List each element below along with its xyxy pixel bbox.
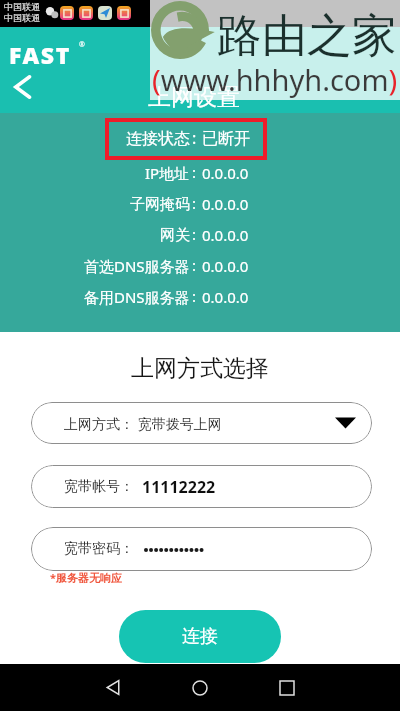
staticText: 备用DNS服务器 xyxy=(84,287,190,307)
staticText: 0.0.0.0 xyxy=(202,256,249,276)
staticText: IP地址 xyxy=(145,163,190,183)
staticText: 上网方式选择 xyxy=(0,354,400,383)
staticText: 首选DNS服务器 xyxy=(84,256,190,276)
staticText: 连接状态 xyxy=(126,129,190,149)
staticText: (www.hhhyh.com) xyxy=(152,60,398,99)
button[interactable]: Back xyxy=(93,664,133,711)
staticText: 子网掩码 xyxy=(130,195,190,214)
staticText: 连接 xyxy=(182,625,218,648)
staticText: : xyxy=(192,255,197,275)
staticText: 已断开 xyxy=(202,129,250,149)
staticText: : xyxy=(192,162,197,182)
button[interactable]: 连接 xyxy=(119,610,281,663)
staticText: : xyxy=(192,224,197,244)
staticText: 0.0.0.0 xyxy=(202,287,249,307)
staticText: 0.0.0.0 xyxy=(202,163,249,183)
staticText: 0.0.0.0 xyxy=(202,225,249,245)
staticText: : xyxy=(192,193,197,213)
staticText: 0.0.0.0 xyxy=(202,194,249,214)
staticText: 宽带密码： xyxy=(64,540,134,558)
staticText: 上网设置 xyxy=(148,83,240,112)
staticText: 网关 xyxy=(160,226,190,245)
staticText: : xyxy=(192,127,197,149)
staticText: 11112222 xyxy=(142,476,216,498)
staticText: *服务器无响应 xyxy=(50,570,122,585)
button[interactable]: 宽带密码： xyxy=(31,527,372,571)
button[interactable]: 上网方式： 宽带拨号上网 xyxy=(31,402,372,444)
staticText: 宽带帐号： xyxy=(64,478,134,496)
button[interactable]: Home xyxy=(180,664,220,711)
button[interactable]: 宽带帐号： xyxy=(31,465,372,508)
staticText: : xyxy=(192,286,197,306)
staticText: ® xyxy=(79,40,85,50)
staticText: 上网方式： 宽带拨号上网 xyxy=(64,414,222,433)
staticText: 中国联通 xyxy=(4,12,40,23)
staticText: 中国联通 xyxy=(4,1,40,12)
staticText: 路由之家 xyxy=(217,8,397,65)
button[interactable]: Back xyxy=(8,72,38,102)
button[interactable]: Recents xyxy=(267,664,307,711)
staticText: FAST xyxy=(9,39,71,70)
